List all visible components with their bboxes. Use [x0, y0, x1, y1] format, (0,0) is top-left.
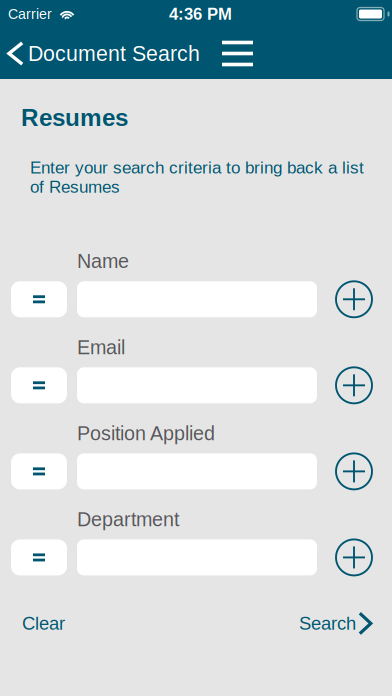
button[interactable]: Search	[285, 601, 392, 645]
staticText: Resumes	[21, 104, 128, 131]
button[interactable]: Add another Department criterion	[335, 538, 373, 576]
button[interactable]: Clear	[0, 603, 87, 644]
button[interactable]: Position Applied comparison operator	[11, 453, 67, 489]
staticText: Document Search	[28, 42, 200, 65]
button[interactable]: Email comparison operator	[11, 367, 67, 403]
staticText: Clear	[22, 613, 65, 634]
staticText: Position Applied	[77, 422, 215, 444]
staticText: Search	[299, 613, 356, 634]
staticText: Email	[77, 336, 125, 358]
button[interactable]: Add another Email criterion	[335, 366, 373, 404]
button[interactable]: Menu	[211, 28, 264, 79]
staticText: Enter your search criteria to bring back…	[30, 158, 364, 196]
button[interactable]: Department comparison operator	[11, 539, 67, 575]
staticText: 4:36 PM	[169, 5, 232, 23]
staticText: Name	[77, 250, 129, 272]
button[interactable]: Add another Name criterion	[335, 280, 373, 318]
button[interactable]: Name comparison operator	[11, 281, 67, 317]
button[interactable]: Back to Document Search	[0, 28, 211, 79]
staticText: Carrier	[8, 6, 52, 22]
button[interactable]: Add another Position Applied criterion	[335, 452, 373, 490]
staticText: Department	[77, 508, 179, 530]
